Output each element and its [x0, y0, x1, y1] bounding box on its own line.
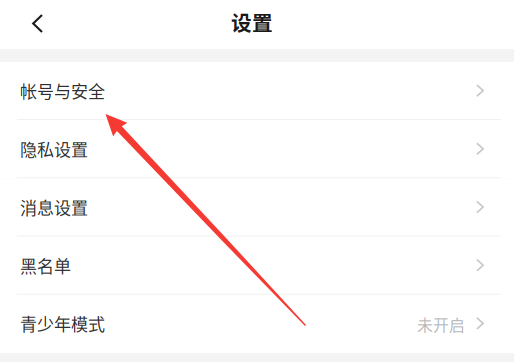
staticText: 帐号与安全 [20, 78, 105, 103]
staticText: 青少年模式 [20, 311, 105, 336]
button[interactable]: 消息设置 [0, 178, 514, 237]
staticText: 黑名单 [20, 253, 71, 277]
staticText: 未开启 [417, 313, 465, 336]
button[interactable]: 黑名单 [0, 237, 514, 295]
button[interactable]: 隐私设置 [0, 120, 514, 178]
staticText: 隐私设置 [20, 136, 88, 161]
button[interactable]: 帐号与安全 [0, 62, 514, 120]
button[interactable]: 青少年模式 [0, 295, 514, 353]
staticText: 设置 [231, 7, 273, 37]
button[interactable]: Back [0, 0, 59, 47]
staticText: 消息设置 [20, 195, 88, 219]
